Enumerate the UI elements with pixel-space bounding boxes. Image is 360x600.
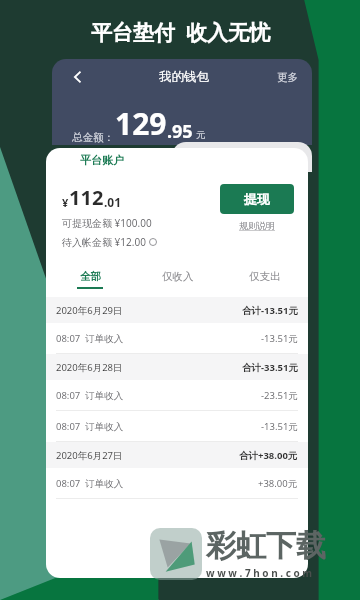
button[interactable]: 08:07 订单收入 bbox=[46, 411, 308, 441]
staticText: 08:07 订单收入 bbox=[56, 420, 124, 433]
button[interactable]: 平台账户 bbox=[80, 153, 124, 167]
staticText: 129 bbox=[115, 103, 167, 144]
staticText: 2020年6月29日 bbox=[56, 304, 123, 317]
button[interactable]: 提现 bbox=[220, 184, 294, 214]
button[interactable]: 规则说明 bbox=[239, 220, 275, 231]
staticText: 112 bbox=[69, 184, 104, 211]
button[interactable]: 高德奖励账户 bbox=[172, 142, 312, 172]
staticText: 待入帐金额 ¥12.00 bbox=[62, 235, 146, 249]
staticText: 合计-33.51元 bbox=[242, 361, 298, 374]
button[interactable]: 更多 bbox=[275, 71, 300, 84]
staticText: 08:07 订单收入 bbox=[56, 389, 124, 402]
staticText: 平台垫付 收入无忧 bbox=[91, 18, 270, 47]
staticText: .01 bbox=[104, 194, 122, 210]
staticText: 仅支出 bbox=[249, 270, 281, 283]
staticText: 总金额： bbox=[72, 131, 114, 144]
staticText: 更多 bbox=[277, 71, 298, 84]
button[interactable]: 仅支出 bbox=[221, 265, 308, 293]
staticText: -13.51元 bbox=[261, 332, 298, 345]
staticText: 合计-13.51元 bbox=[242, 304, 298, 317]
staticText: 08:07 订单收入 bbox=[56, 332, 124, 345]
button[interactable]: 08:07 订单收入 bbox=[46, 468, 308, 498]
staticText: 规则说明 bbox=[239, 220, 275, 231]
staticText: 可提现金额 ¥100.00 bbox=[62, 216, 152, 230]
staticText: .95 bbox=[167, 119, 193, 144]
staticText: 08:07 订单收入 bbox=[56, 477, 124, 490]
staticText: 仅收入 bbox=[162, 270, 194, 283]
staticText: 2020年6月28日 bbox=[56, 361, 123, 374]
staticText: 元 bbox=[196, 129, 206, 141]
staticText: 我的钱包 bbox=[159, 69, 209, 85]
staticText: ¥ bbox=[62, 195, 69, 210]
staticText: 提现 bbox=[244, 191, 270, 207]
button[interactable]: 08:07 订单收入 bbox=[46, 380, 308, 410]
staticText: 合计+38.00元 bbox=[239, 449, 298, 462]
button[interactable]: 08:07 订单收入 bbox=[46, 323, 308, 353]
staticText: 平台账户 bbox=[80, 153, 124, 167]
staticText: -13.51元 bbox=[261, 420, 298, 433]
button[interactable]: Back bbox=[64, 63, 92, 91]
staticText: 彩虹下载 bbox=[206, 527, 326, 565]
button[interactable]: 仅收入 bbox=[134, 265, 221, 293]
staticText: +38.00元 bbox=[258, 477, 298, 490]
button[interactable]: 全部 bbox=[46, 265, 134, 293]
staticText: w w w . 7 h o n . c o m bbox=[206, 566, 313, 580]
staticText: -23.51元 bbox=[261, 389, 298, 402]
staticText: 2020年6月27日 bbox=[56, 449, 123, 462]
staticText: 全部 bbox=[80, 270, 101, 283]
